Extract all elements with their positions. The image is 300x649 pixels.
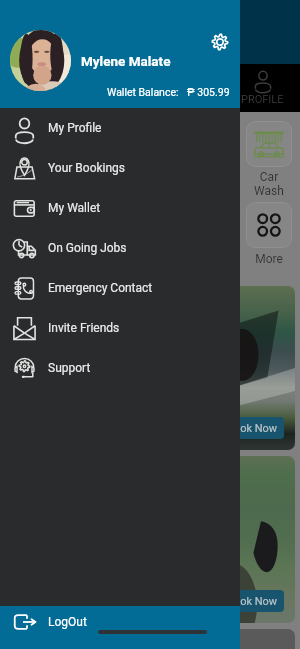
staticText: ₱ 305.99 [187,86,230,98]
staticText: Invite Friends [48,321,120,335]
staticText: LogOut [48,615,87,629]
staticText: My Profile [48,121,102,135]
button[interactable]: Your Bookings [0,148,240,188]
staticText: Wallet Balance: [107,86,179,98]
staticText: Your Bookings [48,161,126,175]
staticText: Mylene Malate [81,53,171,69]
button[interactable]: Book Now [232,456,295,623]
button[interactable] [246,202,292,248]
staticText: Car Wash [240,170,298,198]
button[interactable]: My Wallet [0,188,240,228]
button[interactable]: Book Now [232,590,284,612]
button[interactable]: Book Now [232,417,284,439]
staticText: My Wallet [48,201,101,215]
staticText: PROFILE [241,93,284,106]
button[interactable]: Book Now [232,286,295,450]
button[interactable]: Settings [206,28,234,56]
staticText: More [240,252,298,266]
button[interactable]: Emergency Contact [0,268,240,308]
button[interactable]: LogOut [0,606,240,649]
staticText: Support [48,361,91,375]
staticText: Emergency Contact [48,281,153,295]
staticText: Book Now [232,422,278,435]
button[interactable]: My Profile [0,108,240,148]
button[interactable] [246,121,292,167]
staticText: Book Now [232,595,278,608]
button[interactable]: Invite Friends [0,308,240,348]
button[interactable]: Support [0,348,240,388]
button[interactable]: On Going Jobs [0,228,240,268]
staticText: On Going Jobs [48,241,127,255]
